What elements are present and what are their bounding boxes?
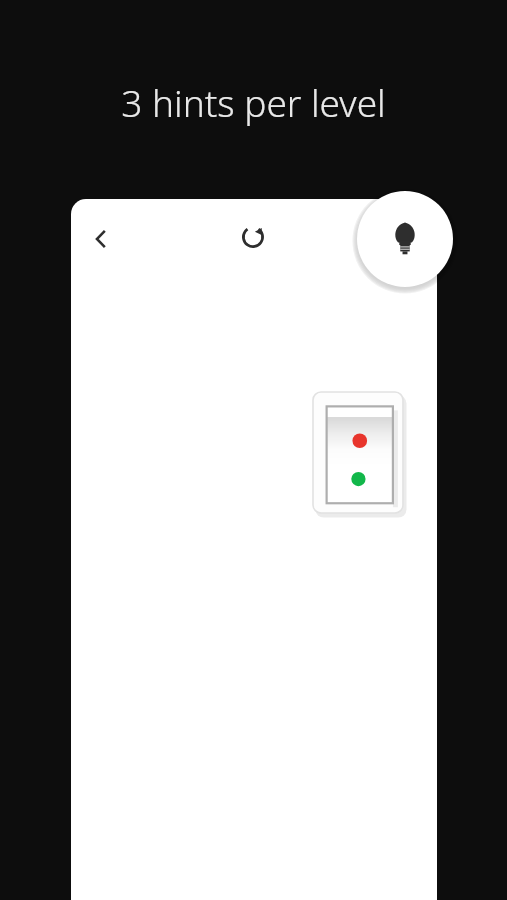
button[interactable]: Hint [357, 191, 453, 287]
staticText: 3 hints per level [121, 77, 386, 127]
button[interactable] [313, 392, 407, 517]
button[interactable]: Refresh [229, 213, 277, 261]
button[interactable]: Back [77, 215, 125, 263]
